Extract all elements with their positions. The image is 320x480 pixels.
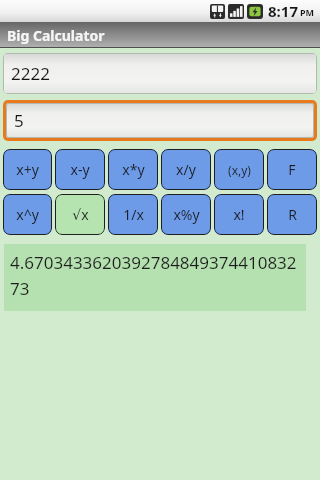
button[interactable]: 5 <box>6 103 314 138</box>
button[interactable]: x+y <box>3 149 52 190</box>
staticText: 8:17 <box>268 1 298 21</box>
button[interactable]: x*y <box>108 149 158 190</box>
staticText: x%y <box>173 205 200 224</box>
staticText: 5 <box>14 109 24 132</box>
button[interactable]: x%y <box>161 194 211 235</box>
staticText: F <box>288 160 296 179</box>
button[interactable]: (x,y) <box>214 149 264 190</box>
staticText: PM <box>300 6 315 18</box>
button[interactable]: 1/x <box>108 194 158 235</box>
staticText: 4.670343362039278484937441083273 <box>10 251 302 300</box>
staticText: x+y <box>16 160 39 179</box>
staticText: x/y <box>176 160 196 179</box>
button[interactable]: x-y <box>55 149 105 190</box>
button[interactable]: 2222 <box>3 53 317 94</box>
button[interactable]: x^y <box>3 194 52 235</box>
button[interactable]: F <box>267 149 317 190</box>
staticText: 1/x <box>123 205 144 224</box>
staticText: x! <box>233 205 245 224</box>
staticText: √x <box>72 205 89 224</box>
button[interactable]: √x <box>55 194 105 235</box>
staticText: x*y <box>122 160 145 179</box>
staticText: x^y <box>16 205 39 224</box>
button[interactable]: R <box>267 194 317 235</box>
button[interactable]: x! <box>214 194 264 235</box>
staticText: (x,y) <box>228 162 251 178</box>
staticText: x-y <box>70 160 90 179</box>
staticText: R <box>288 205 297 224</box>
staticText: 2222 <box>11 62 50 85</box>
staticText: Big Calculator <box>7 26 105 45</box>
button[interactable]: x/y <box>161 149 211 190</box>
